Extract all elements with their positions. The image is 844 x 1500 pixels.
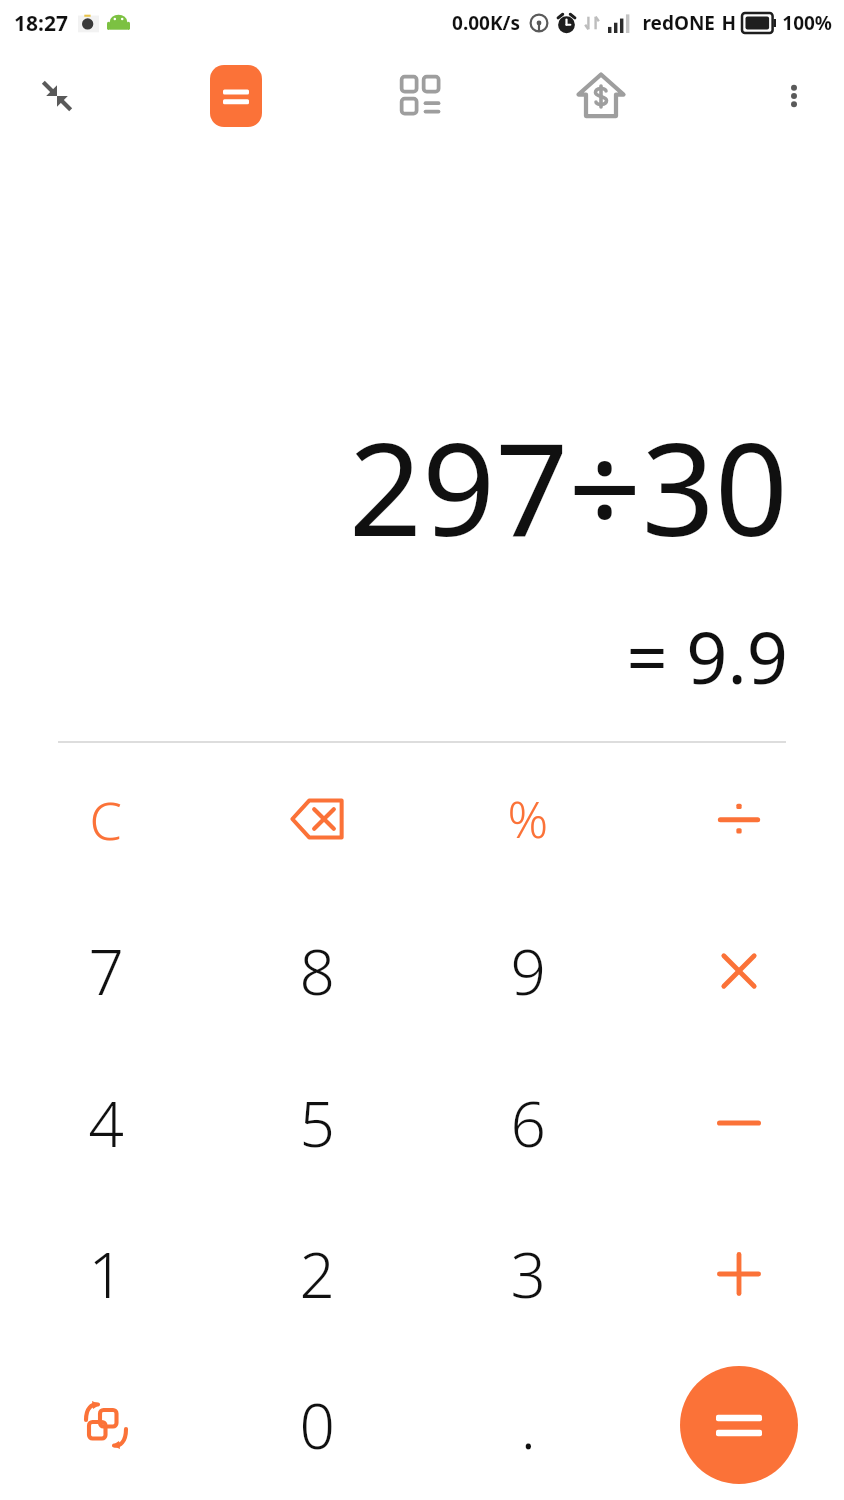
button[interactable]: 297÷30 <box>0 399 844 573</box>
staticText: 0 <box>299 1383 335 1467</box>
staticText: 3 <box>510 1232 546 1316</box>
staticText: % <box>507 785 548 853</box>
button[interactable]: Multiply <box>633 895 844 1047</box>
staticText: 4 <box>88 1081 124 1165</box>
button[interactable]: 3 <box>422 1198 633 1349</box>
button[interactable]: Decimal point <box>422 1349 633 1500</box>
button[interactable]: = 9.9 <box>0 607 844 705</box>
staticText: 7 <box>88 929 124 1013</box>
staticText: 5 <box>299 1081 335 1165</box>
button[interactable]: Minus <box>633 1047 844 1198</box>
staticText: 1 <box>88 1232 124 1316</box>
button[interactable]: 0 <box>211 1349 422 1500</box>
staticText: = 9.9 <box>626 607 788 705</box>
button[interactable]: Plus <box>633 1198 844 1349</box>
staticText: H <box>721 10 736 36</box>
button[interactable]: 6 <box>422 1047 633 1198</box>
button[interactable]: Convert <box>0 1349 211 1500</box>
staticText: 100% <box>782 10 832 36</box>
button[interactable]: Equals <box>680 1366 798 1484</box>
button[interactable]: Loan calculator <box>566 61 636 131</box>
staticText: 297÷30 <box>348 399 788 573</box>
button[interactable]: 8 <box>211 895 422 1047</box>
button[interactable]: Calculator <box>210 65 262 127</box>
staticText: 8 <box>299 929 335 1013</box>
button[interactable]: More options <box>762 64 826 128</box>
staticText: 6 <box>510 1081 546 1165</box>
staticText: 9 <box>510 929 546 1013</box>
staticText: . <box>520 1383 536 1467</box>
button[interactable]: 5 <box>211 1047 422 1198</box>
button[interactable]: 4 <box>0 1047 211 1198</box>
button[interactable]: Unit converter <box>388 63 454 129</box>
staticText: 2 <box>299 1232 335 1316</box>
staticText: redONE <box>642 10 715 36</box>
button[interactable]: Clear <box>0 743 211 895</box>
button[interactable]: Percent <box>422 743 633 895</box>
button[interactable]: Collapse <box>24 63 90 129</box>
button[interactable]: Divide <box>633 743 844 895</box>
button[interactable]: 1 <box>0 1198 211 1349</box>
staticText: 0.00K/s <box>452 10 520 36</box>
button[interactable]: Backspace <box>211 743 422 895</box>
staticText: 18:27 <box>14 9 68 38</box>
staticText: C <box>89 784 122 855</box>
button[interactable]: 2 <box>211 1198 422 1349</box>
button[interactable]: 9 <box>422 895 633 1047</box>
button[interactable]: 7 <box>0 895 211 1047</box>
